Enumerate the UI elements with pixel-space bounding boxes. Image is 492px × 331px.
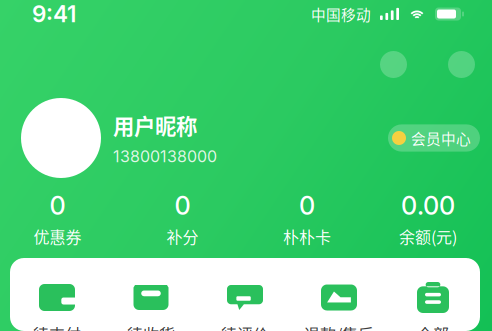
button[interactable]: Profile photo: [21, 98, 101, 178]
button[interactable]: 0.00: [364, 190, 492, 248]
staticText: 待支付: [33, 322, 81, 331]
button[interactable]: 会员中心: [388, 124, 480, 152]
staticText: 0: [49, 190, 65, 221]
staticText: 0: [299, 190, 315, 221]
button[interactable]: Settings: [448, 51, 475, 78]
staticText: 余额(元): [399, 225, 457, 248]
button[interactable]: 退款/售后: [292, 282, 386, 331]
button[interactable]: 待收货: [104, 282, 198, 331]
staticText: 中国移动: [311, 3, 371, 25]
staticText: 退款/售后: [304, 322, 374, 331]
staticText: 9:41: [32, 0, 76, 28]
staticText: 优惠券: [33, 225, 81, 248]
staticText: 全部: [417, 322, 449, 331]
staticText: 待评价: [221, 322, 269, 331]
button[interactable]: 0: [0, 190, 115, 248]
staticText: 13800138000: [113, 147, 217, 166]
staticText: 0: [174, 190, 190, 221]
button[interactable]: 全部: [386, 282, 480, 331]
button[interactable]: 0: [115, 190, 250, 248]
staticText: 用户昵称: [113, 110, 197, 141]
staticText: 朴朴卡: [283, 225, 331, 248]
staticText: 补分: [166, 225, 198, 248]
staticText: 会员中心: [411, 127, 471, 149]
button[interactable]: 0: [250, 190, 364, 248]
staticText: 待收货: [127, 322, 175, 331]
staticText: 0.00: [401, 190, 455, 221]
button[interactable]: 待评价: [198, 282, 292, 331]
button[interactable]: Customer service: [380, 51, 407, 78]
button[interactable]: 待支付: [10, 282, 104, 331]
